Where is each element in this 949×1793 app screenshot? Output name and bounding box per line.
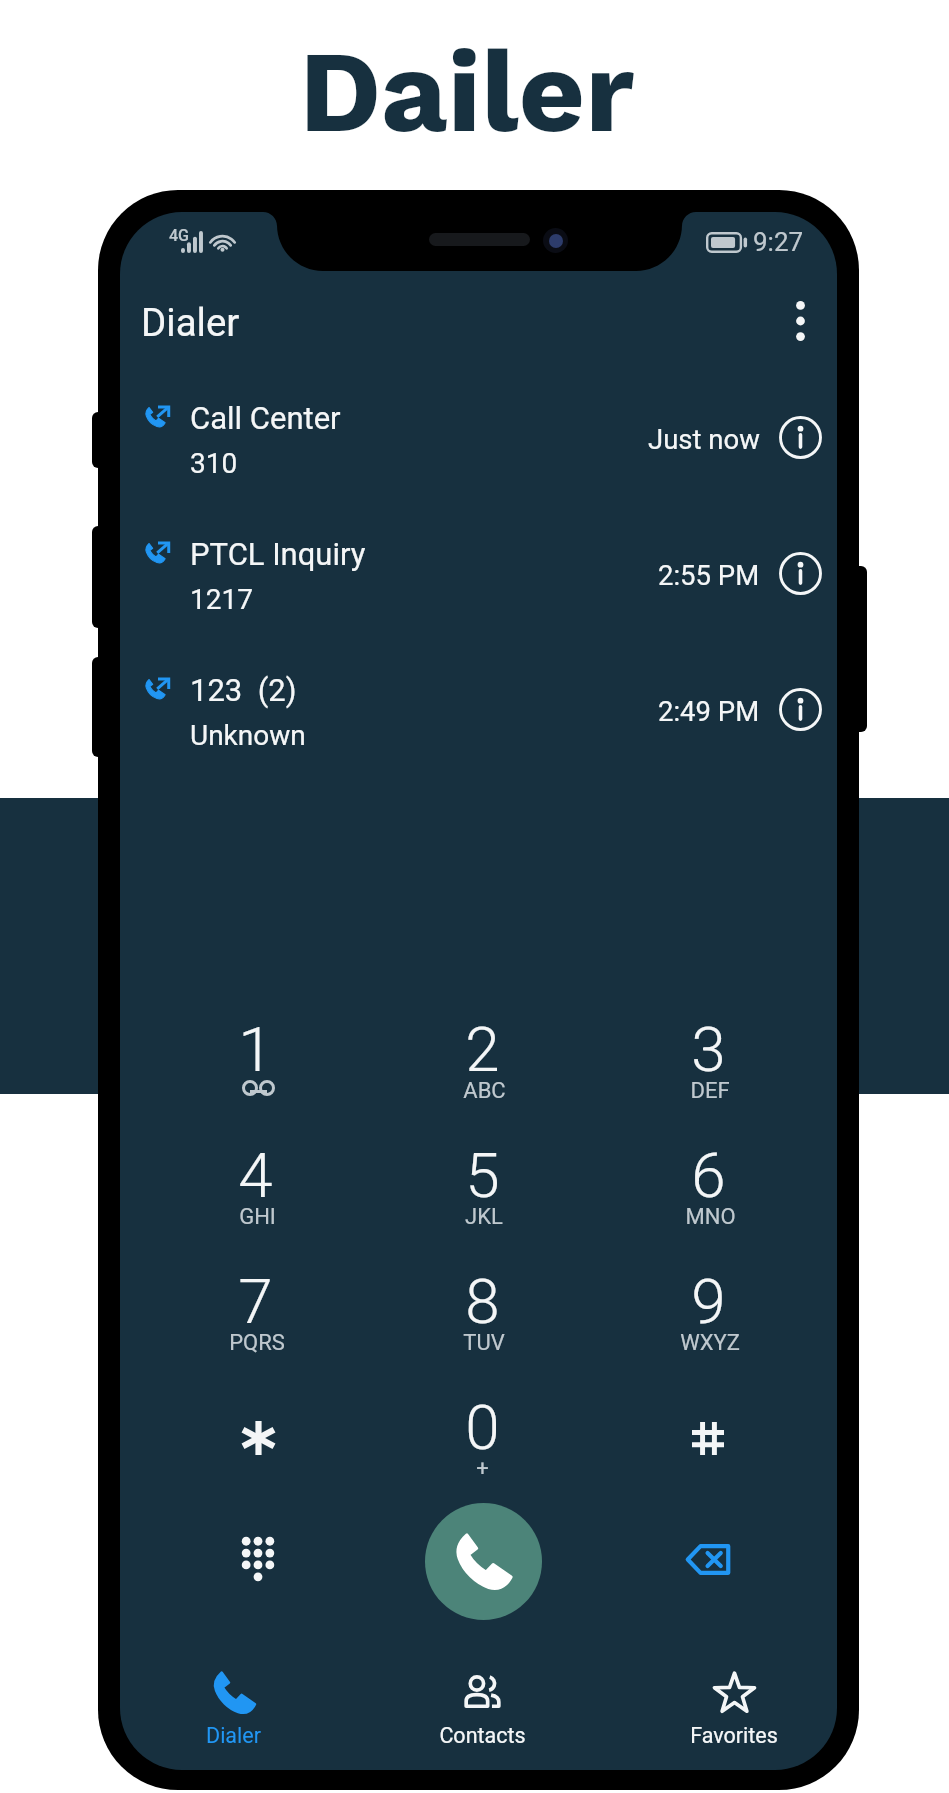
staticText: TUV [463, 1330, 505, 1356]
staticText: Dialer [206, 1723, 261, 1748]
button[interactable]: Call Center [120, 394, 837, 494]
button[interactable] [603, 1388, 813, 1514]
staticText: 1217 [190, 583, 253, 616]
button[interactable]: Show keypad [210, 1514, 300, 1604]
staticText: Just now [648, 423, 760, 455]
staticText: MNO [685, 1204, 736, 1230]
staticText: Dailer [299, 24, 635, 159]
button[interactable]: 2 [377, 1010, 587, 1136]
staticText: PQRS [229, 1330, 285, 1356]
staticText: 4 [238, 1139, 273, 1212]
button[interactable]: Call details [774, 547, 826, 599]
staticText: 123 (2) [190, 672, 297, 708]
staticText: 6 [691, 1139, 726, 1212]
button[interactable]: Favorites [644, 1650, 824, 1760]
button[interactable]: More options [768, 289, 832, 353]
staticText: 9:27 [753, 227, 804, 257]
staticText: PTCL Inquiry [190, 536, 366, 572]
staticText: 2 [465, 1013, 500, 1086]
button[interactable]: Call [425, 1503, 542, 1620]
staticText: 310 [190, 447, 238, 480]
staticText: 0 [465, 1391, 500, 1464]
button[interactable] [150, 1388, 360, 1514]
staticText: 7 [238, 1265, 273, 1338]
staticText: JKL [465, 1204, 503, 1230]
button[interactable]: 123 (2) [120, 666, 837, 766]
button[interactable]: Call details [774, 683, 826, 735]
button[interactable]: 7 [150, 1262, 360, 1388]
staticText: 5 [465, 1139, 500, 1212]
staticText: 4G [169, 226, 189, 245]
button[interactable]: 4 [150, 1136, 360, 1262]
staticText: Contacts [439, 1723, 526, 1748]
staticText: DEF [690, 1078, 730, 1104]
button[interactable]: 6 [603, 1136, 813, 1262]
button[interactable]: PTCL Inquiry [120, 530, 837, 630]
staticText: Favorites [690, 1723, 778, 1748]
staticText: GHI [239, 1204, 276, 1230]
staticText: ABC [463, 1078, 506, 1104]
staticText: Unknown [190, 719, 306, 752]
staticText: Call Center [190, 400, 341, 436]
staticText: 2:55 PM [658, 559, 760, 591]
button[interactable]: 3 [603, 1010, 813, 1136]
button[interactable]: 5 [377, 1136, 587, 1262]
button[interactable]: Contacts [392, 1650, 572, 1760]
button[interactable]: 8 [377, 1262, 587, 1388]
button[interactable]: Call details [774, 411, 826, 463]
button[interactable]: 0 [377, 1388, 587, 1514]
staticText: 1 [238, 1013, 273, 1086]
staticText: WXYZ [680, 1330, 740, 1356]
staticText: 9 [691, 1265, 726, 1338]
staticText: Dialer [141, 300, 240, 345]
staticText: 2:49 PM [658, 695, 760, 727]
button[interactable]: 9 [603, 1262, 813, 1388]
staticText: 3 [691, 1013, 726, 1086]
staticText: 8 [465, 1265, 500, 1338]
button[interactable]: Dialer [143, 1650, 323, 1760]
button[interactable]: 1 [150, 1010, 360, 1136]
button[interactable]: Backspace [663, 1514, 753, 1604]
staticText: + [476, 1456, 489, 1482]
